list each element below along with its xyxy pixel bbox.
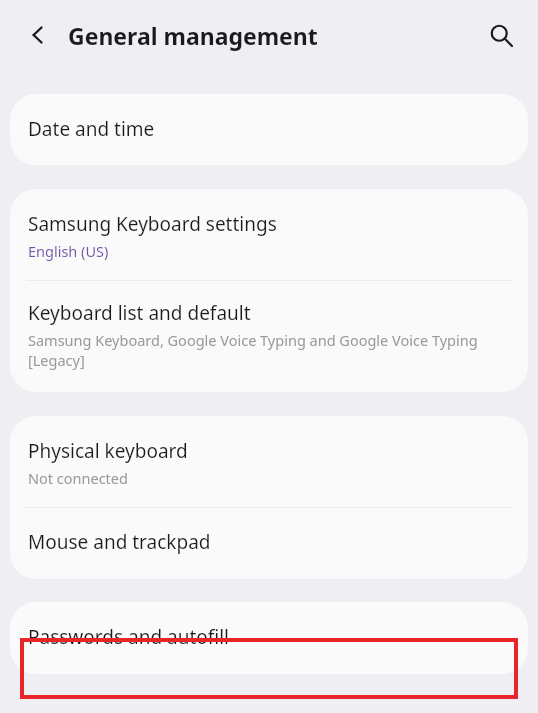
staticText: Passwords and autofill xyxy=(28,624,230,650)
staticText: Samsung Keyboard, Google Voice Typing an… xyxy=(28,330,508,370)
staticText: Mouse and trackpad xyxy=(28,529,211,555)
staticText: Physical keyboard xyxy=(28,438,188,464)
staticText: English (US) xyxy=(28,241,109,261)
button[interactable]: Keyboard list and default xyxy=(10,281,528,392)
staticText: Date and time xyxy=(28,116,155,142)
button[interactable]: Date and time xyxy=(10,94,528,165)
staticText: Keyboard list and default xyxy=(28,300,251,326)
button[interactable]: Physical keyboard xyxy=(10,416,528,507)
staticText: General management xyxy=(68,20,318,51)
button[interactable]: Samsung Keyboard settings xyxy=(10,189,528,280)
staticText: Not connected xyxy=(28,468,128,488)
staticText: Samsung Keyboard settings xyxy=(28,211,277,237)
button[interactable]: Back xyxy=(16,13,60,57)
button[interactable]: Passwords and autofill xyxy=(10,602,528,674)
button[interactable]: Search xyxy=(478,12,524,58)
button[interactable]: Mouse and trackpad xyxy=(10,508,528,579)
